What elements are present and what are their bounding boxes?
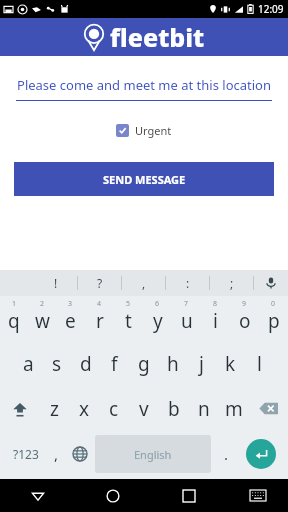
button[interactable]: ?123 xyxy=(6,435,45,473)
staticText: x xyxy=(79,396,90,422)
button[interactable]: v xyxy=(129,386,159,431)
staticText: SEND MESSAGE xyxy=(103,172,186,187)
staticText: English xyxy=(134,447,172,462)
staticText: s xyxy=(52,351,62,377)
button[interactable]: b xyxy=(159,386,189,431)
staticText: o xyxy=(239,308,251,334)
staticText: 4 xyxy=(97,299,102,309)
staticText: q xyxy=(8,308,20,334)
staticText: u xyxy=(181,308,193,334)
button[interactable]: SEND MESSAGE xyxy=(14,162,274,196)
button[interactable]: . xyxy=(213,435,239,473)
button[interactable]: Urgent xyxy=(112,119,176,142)
button[interactable]: z xyxy=(39,386,69,431)
staticText: fleetbit xyxy=(110,20,205,54)
button[interactable]: , xyxy=(122,270,165,296)
button[interactable]: g xyxy=(129,341,158,386)
staticText: l xyxy=(257,351,262,377)
staticText: ; xyxy=(230,275,234,291)
staticText: , xyxy=(54,444,59,464)
button[interactable]: m xyxy=(219,386,249,431)
button[interactable]: Home xyxy=(75,479,151,512)
staticText: 2 xyxy=(40,299,45,309)
button[interactable]: English xyxy=(95,435,211,473)
staticText: . xyxy=(224,444,229,464)
button[interactable]: , xyxy=(45,435,67,473)
staticText: v xyxy=(139,396,149,422)
button[interactable]: 9 xyxy=(230,296,259,341)
staticText: 9 xyxy=(242,299,247,309)
button[interactable]: Enter xyxy=(239,435,282,473)
button[interactable]: 1 xyxy=(0,296,28,341)
button[interactable]: s xyxy=(42,341,71,386)
staticText: , xyxy=(142,275,146,291)
staticText: c xyxy=(109,396,119,422)
staticText: j xyxy=(199,351,204,377)
staticText: : xyxy=(186,275,190,291)
button[interactable]: 3 xyxy=(56,296,85,341)
staticText: w xyxy=(35,308,50,334)
button[interactable]: 4 xyxy=(85,296,114,341)
button[interactable]: 6 xyxy=(143,296,172,341)
button[interactable]: : xyxy=(166,270,209,296)
staticText: ! xyxy=(54,275,58,291)
button[interactable]: Change language xyxy=(67,435,93,473)
staticText: 12:09 xyxy=(258,2,284,16)
button[interactable]: a xyxy=(14,341,42,386)
staticText: g xyxy=(138,351,150,377)
button[interactable]: 0 xyxy=(259,296,288,341)
button[interactable]: ? xyxy=(78,270,121,296)
staticText: y xyxy=(153,308,163,334)
button[interactable]: 5 xyxy=(114,296,143,341)
staticText: Urgent xyxy=(135,123,172,138)
button[interactable]: c xyxy=(99,386,129,431)
staticText: k xyxy=(225,351,236,377)
staticText: a xyxy=(23,351,34,377)
staticText: d xyxy=(80,351,92,377)
button[interactable]: Recent apps xyxy=(151,479,227,512)
staticText: ?123 xyxy=(13,446,39,462)
button[interactable]: n xyxy=(189,386,219,431)
staticText: 1 xyxy=(12,299,17,309)
button[interactable]: Back xyxy=(0,479,75,512)
staticText: 0 xyxy=(271,299,276,309)
button[interactable]: Switch keyboard xyxy=(227,479,288,512)
staticText: t xyxy=(125,308,132,334)
button[interactable]: h xyxy=(158,341,187,386)
staticText: h xyxy=(167,351,179,377)
staticText: z xyxy=(50,396,59,422)
staticText: ? xyxy=(97,275,103,291)
staticText: f xyxy=(111,351,118,377)
button[interactable]: 7 xyxy=(172,296,201,341)
staticText: r xyxy=(96,308,104,334)
button[interactable]: k xyxy=(216,341,245,386)
staticText: Please come and meet me at this location xyxy=(16,76,272,94)
staticText: 7 xyxy=(184,299,189,309)
button[interactable]: ! xyxy=(34,270,77,296)
button[interactable]: l xyxy=(245,341,274,386)
staticText: e xyxy=(65,308,76,334)
button[interactable]: Voice input xyxy=(254,270,288,296)
button[interactable]: 8 xyxy=(201,296,230,341)
button[interactable]: 2 xyxy=(28,296,56,341)
staticText: p xyxy=(268,308,280,334)
staticText: 3 xyxy=(68,299,73,309)
button[interactable]: x xyxy=(69,386,99,431)
staticText: n xyxy=(198,396,210,422)
staticText: i xyxy=(213,308,218,334)
button[interactable]: Backspace xyxy=(249,386,288,431)
staticText: 6 xyxy=(155,299,160,309)
button[interactable]: d xyxy=(71,341,100,386)
staticText: m xyxy=(225,396,243,422)
staticText: 5 xyxy=(126,299,131,309)
button[interactable]: Shift xyxy=(0,386,39,431)
staticText: b xyxy=(168,396,180,422)
button[interactable]: ; xyxy=(210,270,253,296)
staticText: 8 xyxy=(213,299,218,309)
button[interactable]: j xyxy=(187,341,216,386)
button[interactable]: f xyxy=(100,341,129,386)
